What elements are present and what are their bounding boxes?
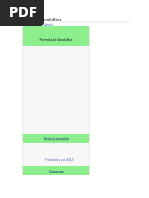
staticText: Attach	[44, 23, 54, 27]
staticText: PDF	[9, 1, 37, 21]
button[interactable]: Envie la conexión	[23, 134, 90, 143]
button[interactable]: Permita-lje AnalyBox	[23, 26, 90, 46]
staticText: Privacidad y uso AQUI	[45, 158, 74, 162]
button[interactable]: PDF	[0, 0, 44, 26]
staticText: validfies	[44, 17, 62, 23]
staticText: Permita-lje AnalyBox	[39, 38, 73, 42]
staticText: Envie la conexión	[44, 137, 69, 141]
staticText: Conectar	[49, 169, 64, 173]
button[interactable]: Conectar	[23, 166, 90, 175]
